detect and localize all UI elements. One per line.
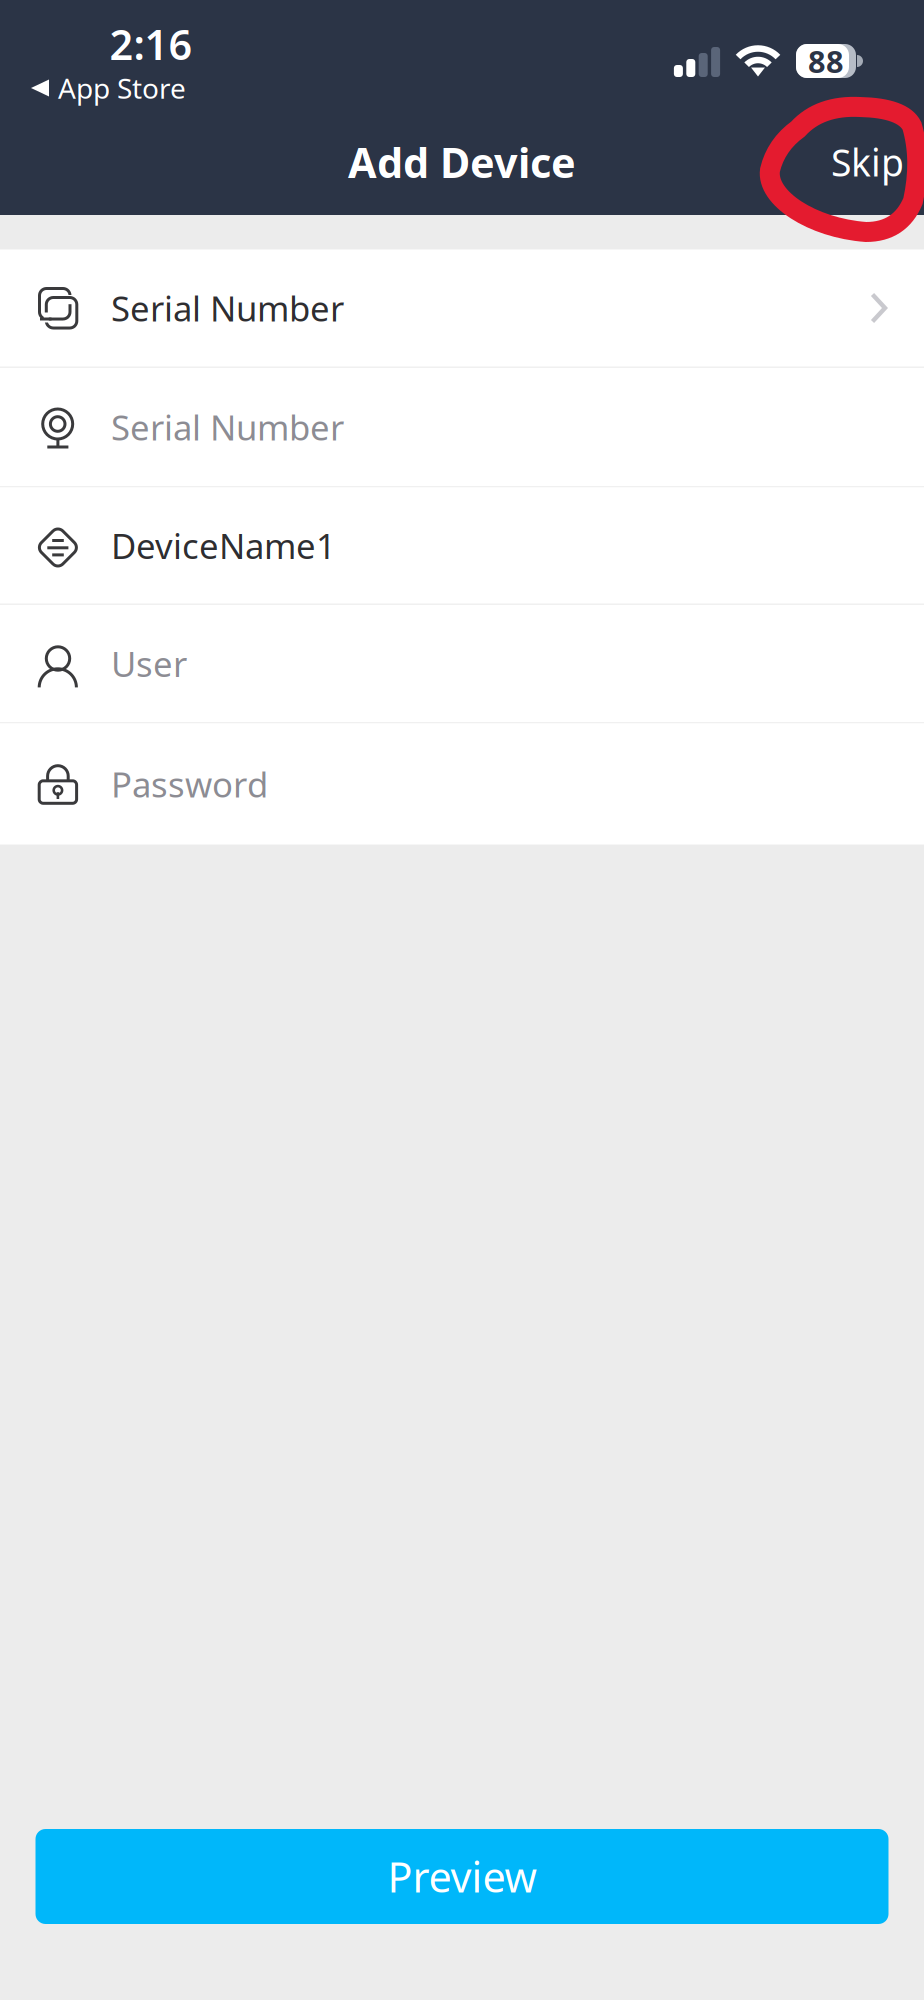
button[interactable]: Preview <box>35 1829 888 1924</box>
button[interactable]: Password <box>0 723 924 844</box>
staticText: Password <box>111 761 268 807</box>
staticText: 88 <box>808 41 844 81</box>
staticText: Skip <box>831 137 904 187</box>
staticText: 2:16 <box>109 17 192 71</box>
staticText: Preview <box>387 1849 536 1904</box>
button[interactable]: App Store <box>31 74 206 102</box>
button[interactable]: DeviceName1 <box>0 487 924 603</box>
button[interactable]: Skip <box>744 122 924 202</box>
staticText: Serial Number <box>111 404 344 450</box>
button[interactable]: User <box>0 605 924 722</box>
staticText: Add Device <box>348 135 576 189</box>
staticText: App Store <box>58 69 186 107</box>
button[interactable]: Serial Number <box>0 249 924 366</box>
staticText: DeviceName1 <box>111 522 336 568</box>
staticText: User <box>111 640 187 686</box>
button[interactable]: Serial Number <box>0 368 924 486</box>
staticText: Serial Number <box>111 285 344 331</box>
